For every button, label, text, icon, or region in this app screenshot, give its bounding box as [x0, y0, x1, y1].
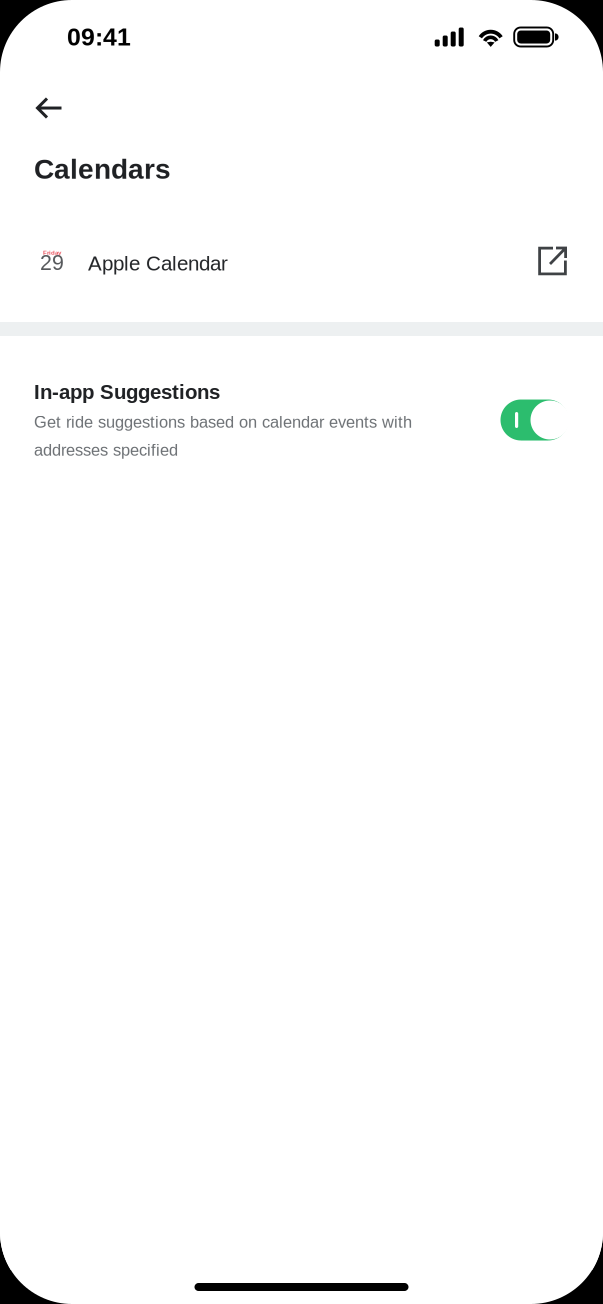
staticText: Calendars [34, 153, 171, 185]
button[interactable]: Back [36, 88, 82, 128]
staticText: Get ride suggestions based on calendar e… [34, 413, 412, 431]
staticText: 09:41 [67, 23, 131, 51]
staticText: 29 [40, 251, 64, 274]
button[interactable]: In-app Suggestions [501, 399, 569, 440]
staticText: In-app Suggestions [34, 381, 220, 403]
staticText: Apple Calendar [88, 252, 228, 275]
button[interactable]: Friday [0, 214, 603, 322]
staticText: addresses specified [34, 441, 178, 459]
staticText: Friday [43, 249, 61, 256]
